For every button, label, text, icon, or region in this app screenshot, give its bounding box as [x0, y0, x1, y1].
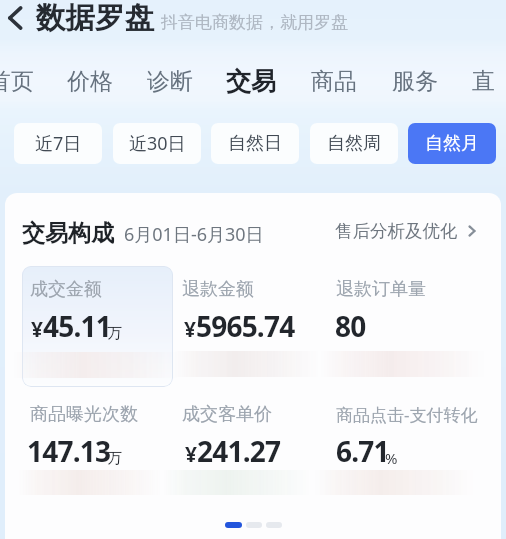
staticText: 万 — [107, 449, 122, 468]
button[interactable]: 近7日 — [14, 123, 102, 164]
staticText: 退款订单量 — [336, 278, 426, 301]
button[interactable]: 服务 — [392, 65, 438, 97]
staticText: 退款金额 — [182, 278, 254, 301]
staticText: 近30日 — [129, 131, 186, 156]
button[interactable] — [22, 266, 173, 387]
button[interactable]: 商品 — [311, 65, 357, 97]
staticText: 自然周 — [327, 132, 381, 155]
staticText: 交易构成 — [22, 219, 114, 248]
staticText: ¥ — [184, 315, 196, 344]
button[interactable]: 直 — [472, 65, 495, 97]
staticText: % — [385, 448, 398, 468]
staticText: 147.13 — [27, 432, 111, 470]
staticText: 近7日 — [35, 131, 82, 156]
staticText: 服务 — [392, 67, 438, 96]
staticText: 5965.74 — [196, 307, 295, 345]
staticText: 6月01日-6月30日 — [124, 222, 264, 247]
button[interactable]: 售后分析及优化 — [335, 217, 479, 245]
button[interactable]: 自然月 — [408, 123, 496, 164]
staticText: 诊断 — [147, 67, 193, 96]
staticText: ¥ — [31, 315, 43, 344]
button[interactable]: 交易 — [226, 65, 276, 97]
staticText: 万 — [107, 324, 122, 343]
staticText: 商品曝光次数 — [30, 403, 138, 426]
button[interactable]: 自然日 — [211, 123, 299, 164]
staticText: 自然日 — [228, 132, 282, 155]
button[interactable]: 自然周 — [310, 123, 398, 164]
button[interactable]: 价格 — [67, 65, 113, 97]
staticText: 商品 — [311, 67, 357, 96]
staticText: 售后分析及优化 — [335, 220, 458, 242]
staticText: 商品点击-支付转化 — [336, 403, 478, 426]
staticText: 交易 — [226, 66, 276, 97]
staticText: 成交客单价 — [182, 403, 272, 426]
button[interactable]: Back — [0, 3, 30, 33]
staticText: 45.11 — [43, 307, 111, 345]
staticText: 241.27 — [197, 432, 281, 470]
staticText: 成交金额 — [30, 278, 102, 301]
staticText: 首页 — [0, 67, 34, 96]
staticText: ¥ — [185, 440, 197, 469]
staticText: 80 — [335, 307, 366, 345]
staticText: 数据罗盘 — [36, 0, 154, 37]
staticText: 6.71 — [336, 432, 389, 470]
staticText: 直 — [472, 67, 495, 96]
staticText: 抖音电商数据，就用罗盘 — [161, 12, 348, 33]
staticText: 自然月 — [425, 132, 479, 155]
button[interactable]: 诊断 — [147, 65, 193, 97]
button[interactable]: 首页 — [0, 65, 34, 97]
staticText: 价格 — [67, 67, 113, 96]
button[interactable]: 近30日 — [113, 123, 201, 164]
